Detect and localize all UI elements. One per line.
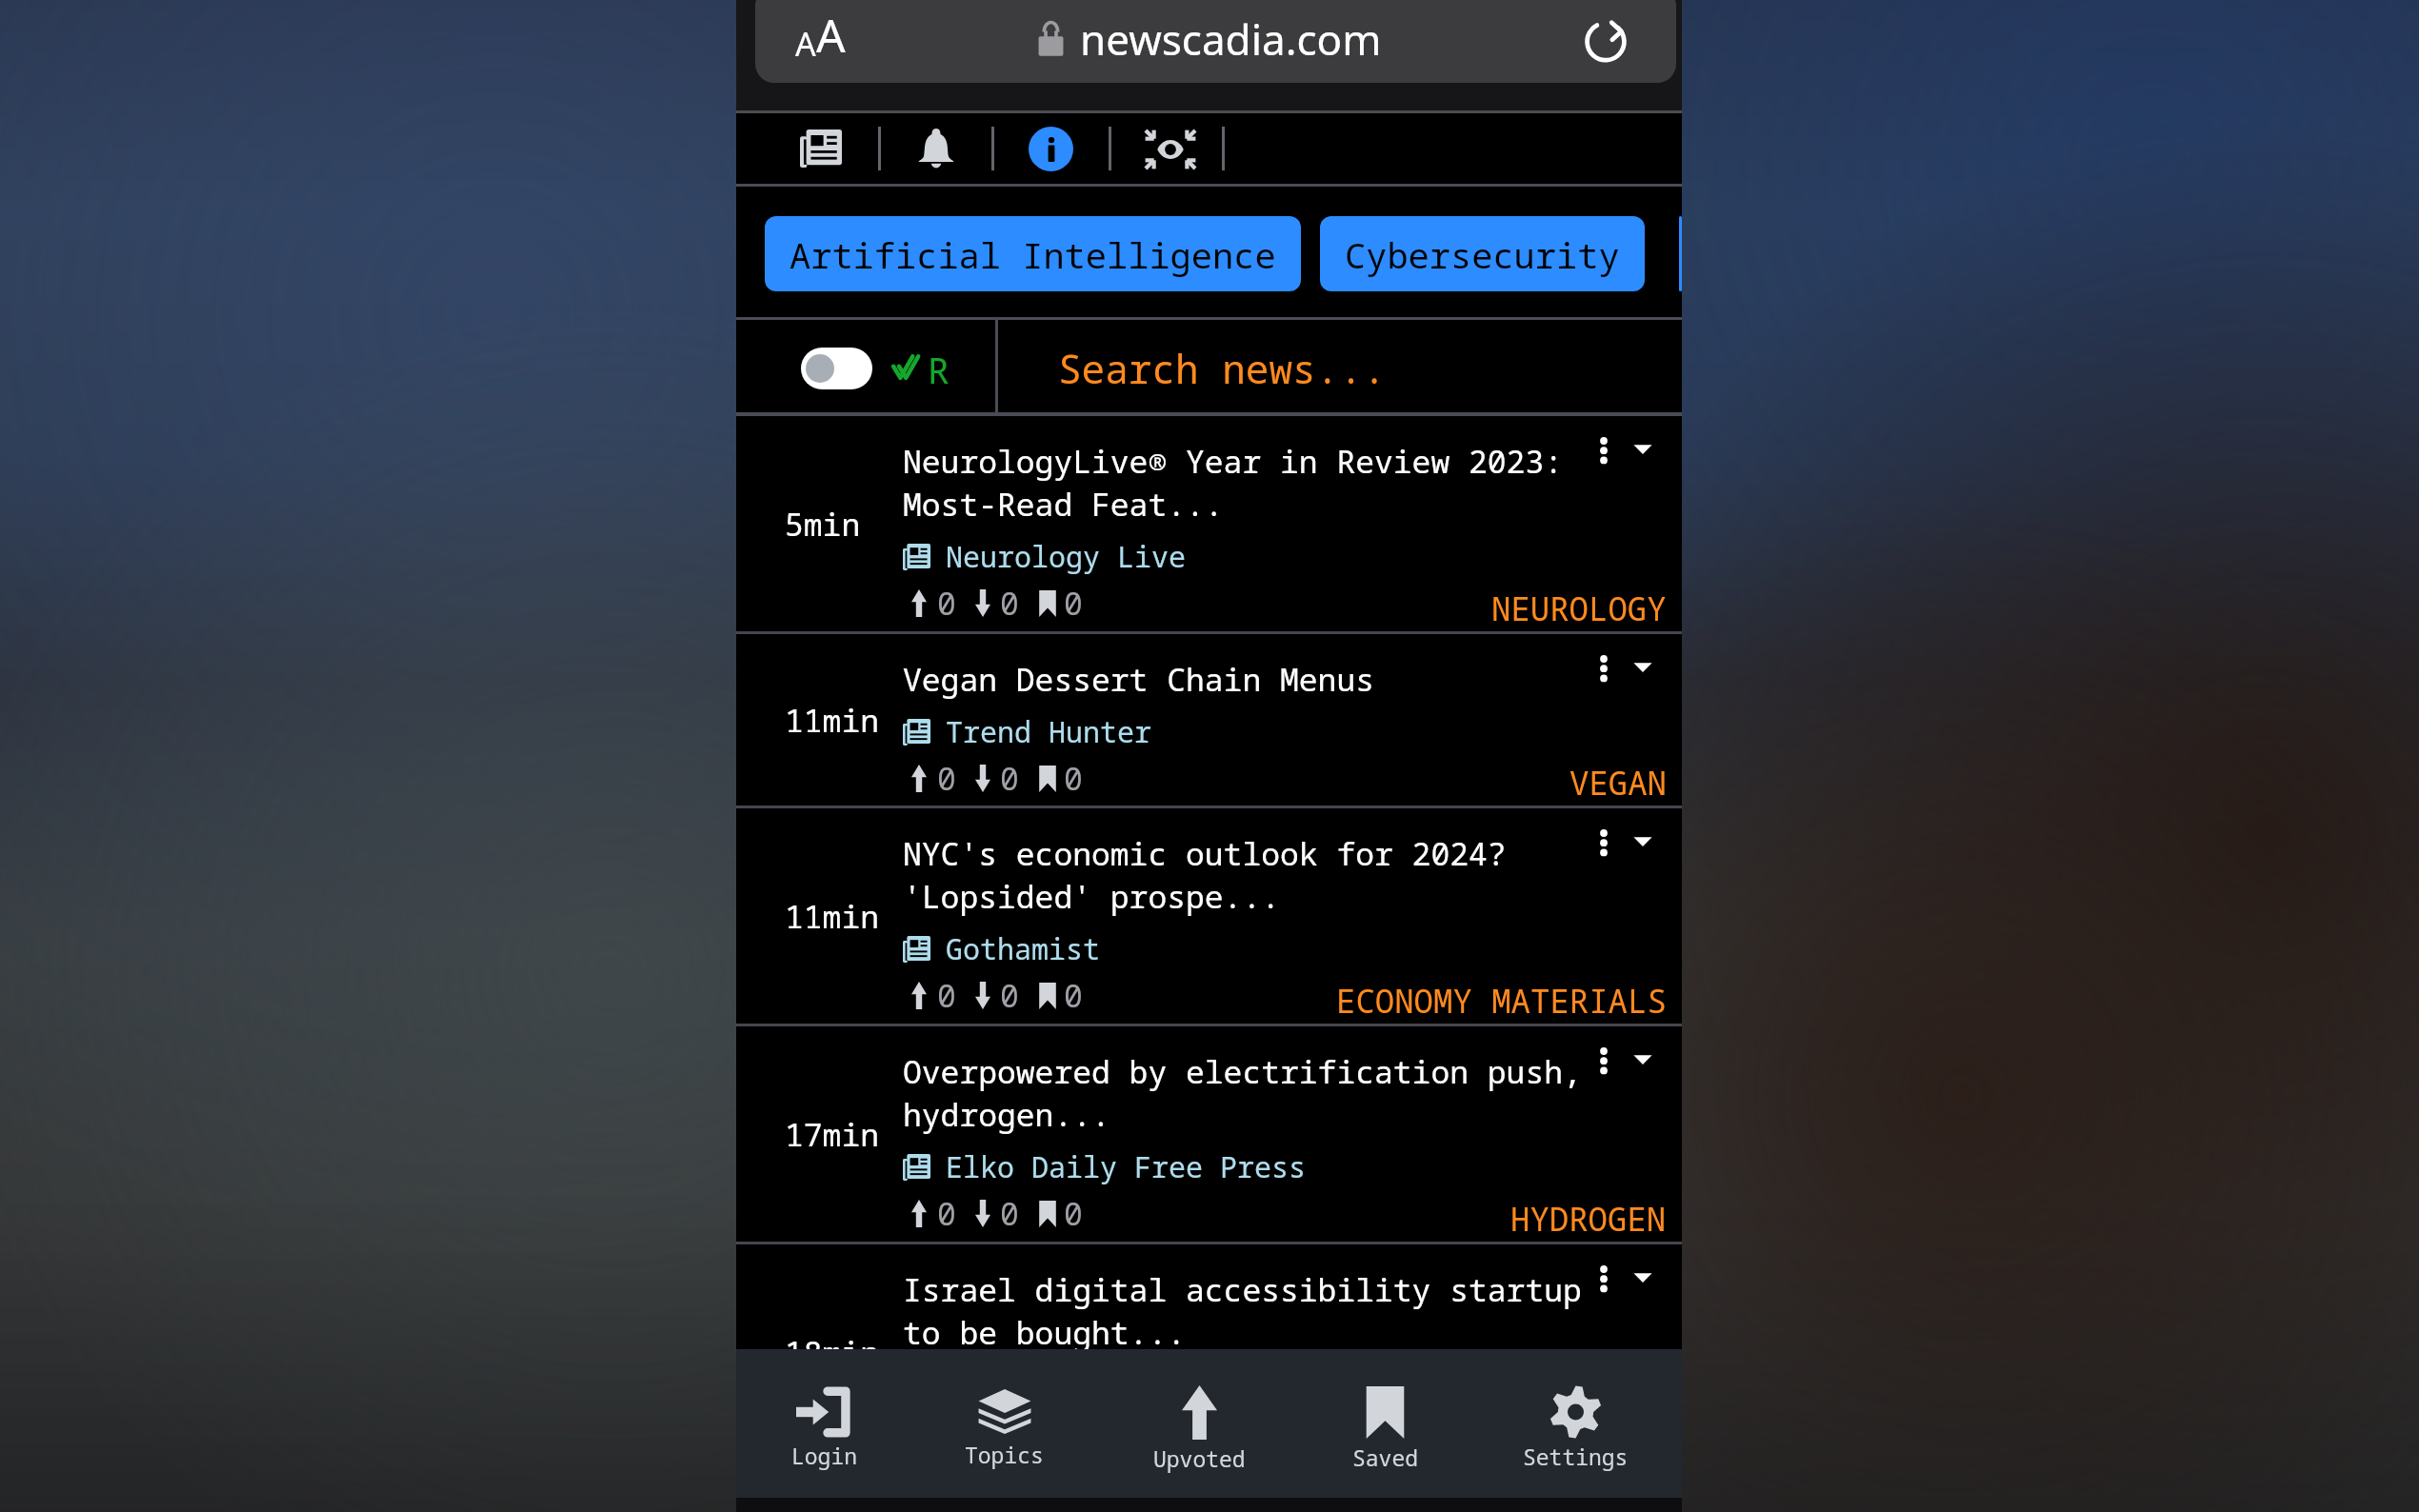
staticText: 0 xyxy=(1064,582,1083,625)
staticText: 'Lopsided' prospe... xyxy=(903,875,1280,918)
staticText: 0 xyxy=(1000,974,1019,1017)
button[interactable]: Artificial Intelligence xyxy=(765,216,1301,291)
staticText: HYDROGEN xyxy=(1510,1197,1667,1241)
staticText: Overpowered by electrification push, xyxy=(903,1050,1582,1093)
staticText: Settings xyxy=(1523,1442,1629,1471)
button[interactable]: More options xyxy=(1591,437,1616,469)
button[interactable]: Expand xyxy=(1631,829,1654,862)
staticText: Upvoted xyxy=(1153,1443,1246,1473)
staticText: 0 xyxy=(1000,582,1019,625)
staticText: Search news... xyxy=(1058,342,1387,395)
staticText: 0 xyxy=(937,757,956,800)
staticText: 5min xyxy=(785,503,861,546)
staticText: ECONOMY MATERIALS xyxy=(1336,979,1667,1023)
button[interactable]: 5min xyxy=(736,416,1682,634)
staticText: A xyxy=(795,22,816,66)
staticText: Neurology Live xyxy=(946,537,1186,576)
staticText: 0 xyxy=(937,1192,956,1235)
staticText: 17min xyxy=(785,1113,880,1156)
button[interactable]: Reload xyxy=(1578,12,1633,68)
staticText: 0 xyxy=(937,974,956,1017)
button[interactable]: Search news... xyxy=(998,320,1682,416)
button[interactable]: Expand xyxy=(1631,437,1654,469)
button[interactable]: Info xyxy=(993,113,1109,184)
button[interactable] xyxy=(1679,216,1682,291)
staticText: Artificial Intelligence xyxy=(790,230,1276,278)
button[interactable]: Cybersecurity xyxy=(1320,216,1645,291)
staticText: Most-Read Feat... xyxy=(903,483,1224,526)
staticText: Topics xyxy=(965,1440,1044,1469)
staticText: Vegan Dessert Chain Menus xyxy=(903,658,1374,701)
staticText: 11min xyxy=(785,699,880,742)
staticText: 11min xyxy=(785,895,880,938)
button[interactable]: News xyxy=(763,113,878,184)
staticText: to be bought... xyxy=(903,1311,1186,1354)
button[interactable]: Settings xyxy=(1469,1360,1682,1498)
staticText: R xyxy=(928,345,950,394)
button[interactable]: Expand xyxy=(1631,1265,1654,1298)
staticText: NEUROLOGY xyxy=(1491,587,1667,630)
staticText: NeurologyLive® Year in Review 2023: xyxy=(903,440,1563,483)
staticText: 0 xyxy=(1064,1192,1083,1235)
staticText: Login xyxy=(791,1441,858,1470)
staticText: hydrogen... xyxy=(903,1093,1110,1136)
button[interactable]: Notifications xyxy=(878,113,993,184)
button[interactable]: More options xyxy=(1591,1047,1616,1080)
staticText: NYC's economic outlook for 2024? xyxy=(903,832,1507,875)
staticText: Israel digital accessibility startup xyxy=(903,1268,1582,1311)
staticText: Trend Hunter xyxy=(946,712,1151,751)
button[interactable]: 11min xyxy=(736,634,1682,808)
staticText: A xyxy=(816,4,846,66)
staticText: 0 xyxy=(1000,757,1019,800)
button[interactable]: Expand xyxy=(1631,1047,1654,1080)
staticText: 0 xyxy=(1064,757,1083,800)
button[interactable]: 17min xyxy=(736,1026,1682,1244)
button[interactable]: R xyxy=(736,320,995,416)
button[interactable]: Expand xyxy=(1631,655,1654,687)
staticText: Elko Daily Free Press xyxy=(946,1147,1306,1186)
button[interactable]: 11min xyxy=(736,808,1682,1026)
button[interactable]: Upvoted xyxy=(1096,1360,1302,1498)
staticText: Gothamist xyxy=(946,929,1100,968)
button[interactable]: Topics xyxy=(912,1360,1096,1498)
button[interactable]: 18min xyxy=(736,1244,1682,1462)
button[interactable]: Focus mode xyxy=(1109,113,1231,184)
button[interactable]: More options xyxy=(1591,829,1616,862)
button[interactable]: A xyxy=(795,4,846,66)
staticText: Cybersecurity xyxy=(1345,230,1620,278)
staticText: 18min xyxy=(785,1331,880,1374)
button[interactable]: More options xyxy=(1591,655,1616,687)
staticText: 0 xyxy=(937,582,956,625)
staticText: 0 xyxy=(1000,1192,1019,1235)
button[interactable]: More options xyxy=(1591,1265,1616,1298)
button[interactable]: Saved xyxy=(1302,1360,1469,1498)
staticText: VEGAN xyxy=(1569,761,1667,805)
staticText: newscadia.com xyxy=(1080,10,1382,68)
staticText: Saved xyxy=(1352,1442,1419,1472)
staticText: 0 xyxy=(1064,974,1083,1017)
button[interactable]: Login xyxy=(736,1360,912,1498)
